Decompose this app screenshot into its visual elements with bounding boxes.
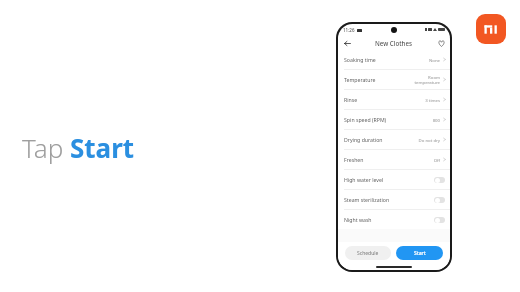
staticText: Rinse <box>344 96 425 103</box>
button[interactable]: High water level <box>338 170 450 189</box>
staticText: 11:26 <box>343 27 355 33</box>
button[interactable]: Steam sterilization <box>338 190 450 209</box>
staticText: Start <box>414 250 426 257</box>
button[interactable]: Start <box>396 246 443 260</box>
button[interactable]: Drying duration <box>338 130 450 149</box>
button[interactable]: Freshen <box>338 150 450 169</box>
other: Xiaomi logo <box>476 14 506 44</box>
staticText: 800 <box>432 117 440 123</box>
button[interactable]: Back <box>341 37 353 49</box>
staticText: 3 times <box>425 97 440 103</box>
button[interactable]: Night wash toggle <box>434 217 445 223</box>
staticText: Schedule <box>357 250 379 257</box>
staticText: Temperature <box>344 76 414 83</box>
button[interactable]: Spin speed (RPM) <box>338 110 450 129</box>
staticText: Soaking time <box>344 56 429 63</box>
staticText: Spin speed (RPM) <box>344 116 432 123</box>
staticText: Do not dry <box>418 137 440 143</box>
button[interactable]: Soaking time <box>338 50 450 69</box>
staticText: None <box>429 57 440 63</box>
staticText: Start <box>70 130 135 165</box>
button[interactable]: Temperature <box>338 70 450 89</box>
button[interactable]: Rinse <box>338 90 450 109</box>
staticText: Drying duration <box>344 136 418 143</box>
staticText: Freshen <box>344 156 433 163</box>
staticText: Steam sterilization <box>344 196 434 203</box>
staticText: High water level <box>344 176 434 183</box>
button[interactable]: Night wash <box>338 210 450 229</box>
staticText: Room temperature <box>414 74 440 85</box>
button[interactable]: High water level toggle <box>434 177 445 183</box>
staticText: New Clothes <box>375 39 413 47</box>
staticText: Tap <box>22 130 70 165</box>
button[interactable]: Schedule <box>345 246 391 260</box>
button[interactable]: Steam sterilization toggle <box>434 197 445 203</box>
staticText: Off <box>433 157 440 163</box>
button[interactable]: Favorite <box>435 37 447 49</box>
staticText: Night wash <box>344 216 434 223</box>
